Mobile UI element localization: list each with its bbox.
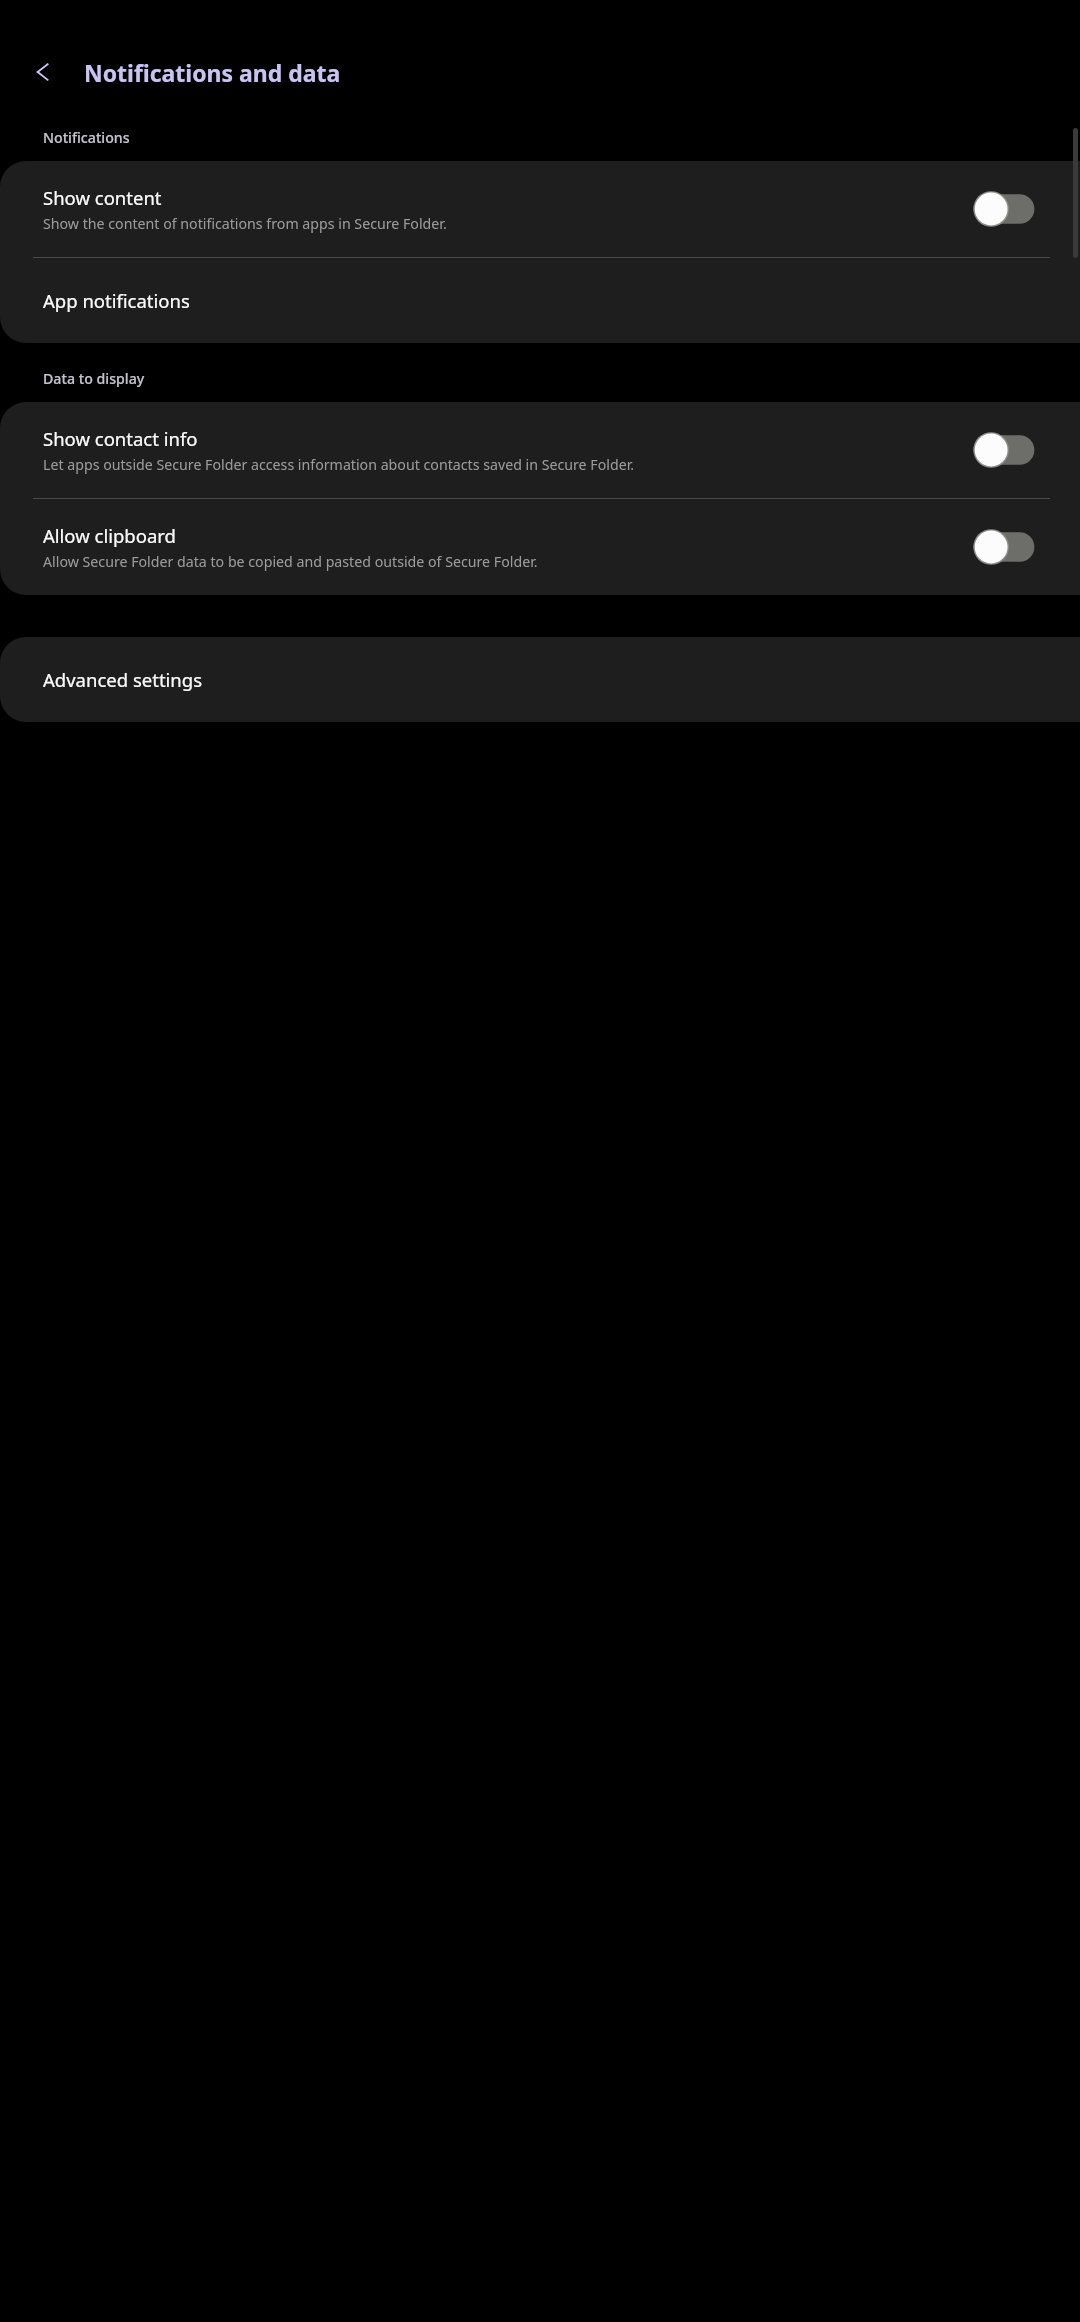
staticText: Notifications bbox=[43, 128, 130, 147]
button[interactable]: Show contact info bbox=[0, 402, 1080, 498]
staticText: Notifications and data bbox=[84, 57, 341, 88]
staticText: Let apps outside Secure Folder access in… bbox=[43, 455, 635, 474]
staticText: Allow clipboard bbox=[43, 523, 176, 548]
button[interactable]: Show content bbox=[0, 161, 1080, 257]
staticText: Allow Secure Folder data to be copied an… bbox=[43, 552, 538, 571]
other: Toggle bbox=[971, 431, 1037, 469]
button[interactable]: Back bbox=[22, 49, 68, 95]
button[interactable]: Allow clipboard bbox=[0, 499, 1080, 595]
staticText: Show content bbox=[43, 185, 162, 210]
staticText: Show contact info bbox=[43, 426, 198, 451]
staticText: App notifications bbox=[43, 288, 190, 313]
other: Toggle bbox=[971, 190, 1037, 228]
button[interactable]: Advanced settings bbox=[0, 637, 1080, 722]
staticText: Data to display bbox=[43, 369, 145, 388]
other: Toggle bbox=[971, 528, 1037, 566]
staticText: Show the content of notifications from a… bbox=[43, 214, 447, 233]
button[interactable]: App notifications bbox=[0, 258, 1080, 343]
staticText: Advanced settings bbox=[43, 667, 203, 692]
